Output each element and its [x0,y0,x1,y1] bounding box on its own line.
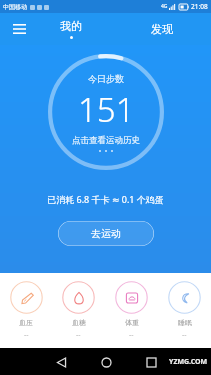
staticText: -- [182,330,187,340]
staticText: 4G [161,3,168,10]
staticText: -- [76,330,81,340]
staticText: 去运动 [91,227,121,240]
staticText: -- [129,330,134,340]
staticText: 血压 [19,318,33,327]
button[interactable]: 体重 [105,273,158,348]
staticText: 151 [78,87,135,132]
staticText: 我的 [60,19,82,33]
staticText: YZMG.COM [169,357,208,367]
button[interactable]: 睡眠 [158,273,211,348]
button[interactable]: 去运动 [58,221,154,246]
staticText: 点击查看运动历史 [72,135,140,146]
button[interactable]: 今日步数 [47,53,165,171]
staticText: 发现 [151,22,173,36]
button[interactable]: 血糖 [52,273,105,348]
staticText: 21:08 [191,2,208,11]
button[interactable]: 我的 [60,19,82,39]
staticText: 已消耗 6.8 千卡 ≈ 0.1 个鸡蛋 [47,193,164,205]
staticText: 今日步数 [88,73,124,84]
button[interactable]: 发现 [151,22,173,36]
staticText: 血糖 [72,318,86,327]
button[interactable]: Menu [8,18,30,40]
staticText: -- [24,330,29,340]
staticText: 体重 [125,318,139,327]
button[interactable]: Home [96,352,116,372]
button[interactable]: 血压 [0,273,52,348]
button[interactable]: Recents [141,352,161,372]
staticText: 睡眠 [178,318,192,327]
staticText: 中国移动 [3,3,27,11]
button[interactable]: Back [51,352,71,372]
